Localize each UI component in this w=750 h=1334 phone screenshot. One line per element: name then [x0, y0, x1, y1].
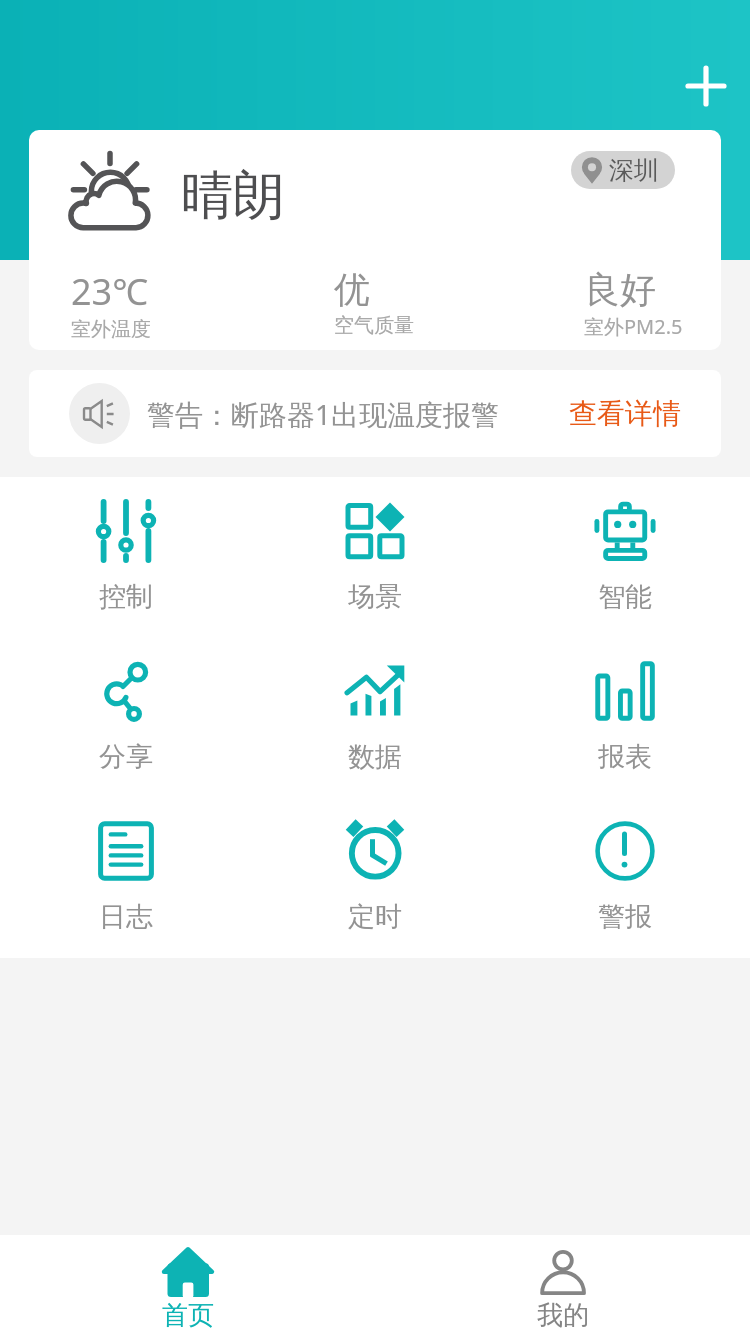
staticText: 查看详情	[569, 396, 681, 431]
button[interactable]: 数据	[295, 659, 455, 789]
staticText: 良好	[584, 267, 656, 312]
staticText: 晴朗	[181, 163, 285, 229]
button[interactable]: 分享	[46, 659, 206, 789]
staticText: 23℃	[71, 267, 149, 316]
button[interactable]: 深圳	[571, 151, 675, 189]
staticText: 报表	[598, 740, 652, 774]
button[interactable]: 报表	[545, 659, 705, 789]
button[interactable]: 我的	[493, 1235, 633, 1334]
staticText: 警告：断路器1出现温度报警	[147, 395, 500, 433]
staticText: 日志	[99, 900, 153, 934]
staticText: 数据	[348, 740, 402, 774]
staticText: 我的	[537, 1299, 589, 1332]
button[interactable]: 控制	[46, 499, 206, 629]
button[interactable]: 日志	[46, 819, 206, 949]
button[interactable]: 定时	[295, 819, 455, 949]
staticText: 室外PM2.5	[584, 313, 683, 340]
staticText: 智能	[598, 580, 652, 614]
button[interactable]: Add device	[668, 48, 744, 124]
button[interactable]: 警报	[545, 819, 705, 949]
staticText: 深圳	[609, 155, 659, 186]
staticText: 优	[334, 267, 370, 312]
staticText: 定时	[348, 900, 402, 934]
staticText: 控制	[99, 580, 153, 614]
staticText: 室外温度	[71, 317, 151, 342]
staticText: 分享	[99, 740, 153, 774]
button[interactable]: 首页	[118, 1235, 258, 1334]
button[interactable]: 警告：断路器1出现温度报警	[29, 370, 721, 457]
staticText: 场景	[348, 580, 402, 614]
staticText: 首页	[162, 1299, 214, 1332]
button[interactable]: 场景	[295, 499, 455, 629]
staticText: 空气质量	[334, 313, 414, 338]
button[interactable]: 智能	[545, 499, 705, 629]
button[interactable]: 晴朗	[29, 130, 721, 350]
staticText: 警报	[598, 900, 652, 934]
